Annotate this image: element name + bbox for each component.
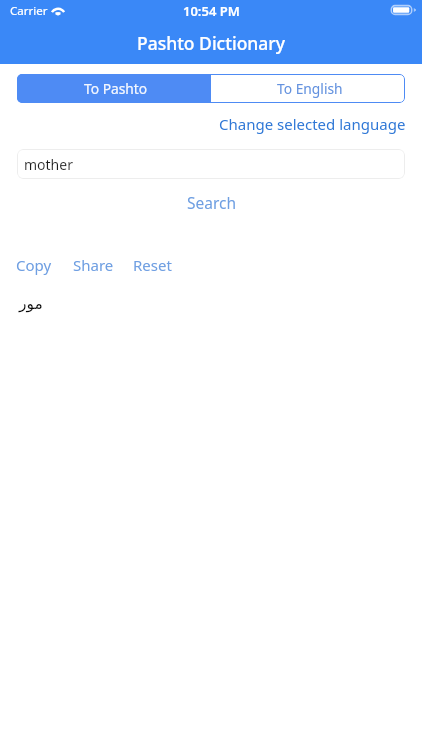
button[interactable]: To English xyxy=(211,74,405,103)
staticText: مور xyxy=(19,295,43,313)
staticText: To English xyxy=(277,79,343,98)
staticText: Copy xyxy=(16,255,52,275)
staticText: mother xyxy=(24,155,73,174)
staticText: Carrier xyxy=(10,3,48,19)
other: Wi-Fi xyxy=(50,5,66,16)
button[interactable]: To Pashto xyxy=(17,74,211,103)
other: Battery xyxy=(390,4,416,16)
button[interactable]: mother xyxy=(17,149,405,179)
staticText: Share xyxy=(73,255,114,275)
button[interactable]: Change selected language xyxy=(216,111,406,137)
staticText: To Pashto xyxy=(84,79,148,98)
staticText: Change selected language xyxy=(219,114,406,134)
staticText: Search xyxy=(187,192,237,213)
button[interactable]: Reset xyxy=(125,251,180,279)
staticText: 10:54 PM xyxy=(183,2,240,20)
staticText: Pashto Dictionary xyxy=(137,31,285,55)
button[interactable]: Share xyxy=(65,251,122,279)
staticText: Reset xyxy=(133,255,172,275)
button[interactable]: Search xyxy=(163,188,259,216)
button[interactable]: Copy xyxy=(8,251,60,279)
